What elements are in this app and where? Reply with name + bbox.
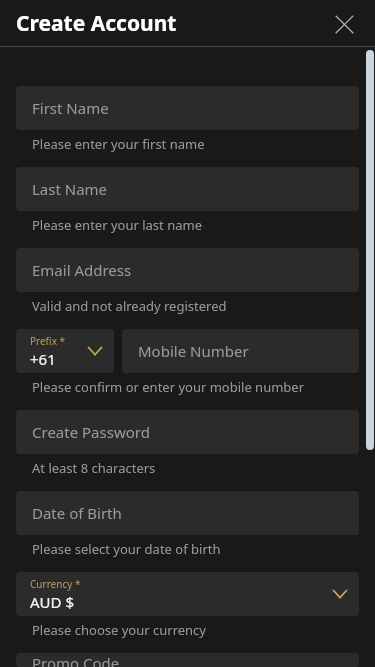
- staticText: Valid and not already registered: [32, 297, 227, 315]
- button[interactable]: Promo Code: [16, 653, 359, 667]
- button[interactable]: Last Name: [16, 167, 359, 211]
- staticText: Create Password: [32, 422, 150, 442]
- staticText: Please enter your last name: [32, 216, 202, 234]
- staticText: AUD $: [30, 592, 74, 612]
- button[interactable]: Close: [327, 7, 361, 41]
- staticText: Prefix *: [30, 334, 66, 348]
- staticText: Please select your date of birth: [32, 540, 221, 558]
- button[interactable]: Create Password: [16, 410, 359, 454]
- staticText: Last Name: [32, 179, 108, 199]
- staticText: Currency *: [30, 577, 81, 591]
- staticText: First Name: [32, 98, 109, 118]
- button[interactable]: Prefix *: [16, 329, 114, 373]
- button[interactable]: Mobile Number: [122, 329, 359, 373]
- button[interactable]: First Name: [16, 86, 359, 130]
- staticText: +61: [30, 349, 56, 369]
- button[interactable]: Email Address: [16, 248, 359, 292]
- staticText: Please enter your first name: [32, 135, 205, 153]
- button[interactable]: Currency *: [16, 572, 359, 616]
- staticText: Please confirm or enter your mobile numb…: [32, 378, 305, 396]
- staticText: Date of Birth: [32, 503, 122, 523]
- button[interactable]: Date of Birth: [16, 491, 359, 535]
- staticText: Email Address: [32, 260, 132, 280]
- staticText: Create Account: [16, 9, 177, 38]
- staticText: Please choose your currency: [32, 621, 206, 639]
- staticText: Mobile Number: [138, 341, 249, 361]
- staticText: At least 8 characters: [32, 459, 156, 477]
- staticText: Promo Code: [32, 653, 120, 667]
